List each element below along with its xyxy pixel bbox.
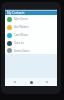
button[interactable]: Emma Stone [5,47,57,54]
button[interactable]: Alice Green [5,15,57,23]
staticText: Carol Nixon [14,33,29,37]
button[interactable]: Carol Nixon [5,31,57,39]
button[interactable]: Recent apps [41,78,53,86]
staticText: Ben Walters [14,25,29,29]
button[interactable]: Dave Lu [5,39,57,47]
staticText: Emma Stone [14,49,30,53]
button[interactable]: Home [25,78,37,86]
staticText: Dave Lu [14,41,24,45]
button[interactable]: Back [9,78,21,86]
staticText: My Contacts [7,11,25,15]
staticText: Alice Green [14,17,28,21]
button[interactable]: Ben Walters [5,23,57,31]
button[interactable]: My Contacts [5,11,57,15]
